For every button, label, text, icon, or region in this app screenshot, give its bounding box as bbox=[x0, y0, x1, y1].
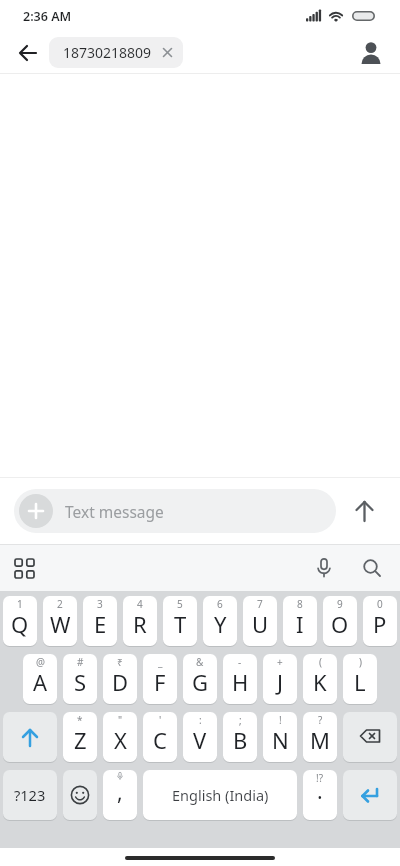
staticText: C bbox=[153, 725, 167, 755]
button[interactable]: _ bbox=[143, 654, 177, 704]
button[interactable]: 8 bbox=[283, 596, 317, 646]
button[interactable] bbox=[336, 485, 392, 537]
staticText: V bbox=[193, 725, 207, 755]
staticText: 0 bbox=[377, 597, 383, 611]
staticText: U bbox=[252, 609, 269, 639]
staticText: 6 bbox=[217, 597, 223, 611]
button[interactable]: 3 bbox=[83, 596, 117, 646]
button[interactable]: , bbox=[103, 770, 137, 820]
button[interactable]: English (India) bbox=[143, 770, 297, 820]
button[interactable]: 1 bbox=[3, 596, 37, 646]
staticText: & bbox=[196, 655, 204, 669]
button[interactable]: ? bbox=[303, 712, 337, 762]
button[interactable] bbox=[357, 553, 387, 583]
button[interactable]: 7 bbox=[243, 596, 277, 646]
button[interactable]: - bbox=[223, 654, 257, 704]
button[interactable] bbox=[3, 712, 57, 762]
button[interactable]: ₹ bbox=[103, 654, 137, 704]
staticText: Text message bbox=[65, 501, 164, 522]
button[interactable] bbox=[343, 770, 397, 820]
button[interactable] bbox=[14, 39, 42, 67]
staticText: + bbox=[277, 655, 283, 669]
button[interactable]: ! bbox=[263, 712, 297, 762]
button[interactable]: !? bbox=[303, 770, 337, 820]
button[interactable]: @ bbox=[23, 654, 57, 704]
staticText: ( bbox=[319, 655, 322, 669]
staticText: J bbox=[277, 667, 284, 697]
button[interactable] bbox=[343, 712, 397, 762]
staticText: ! bbox=[279, 713, 282, 727]
staticText: D bbox=[112, 667, 129, 697]
staticText: 5 bbox=[177, 597, 183, 611]
button[interactable] bbox=[309, 553, 339, 583]
staticText: Y bbox=[214, 609, 227, 639]
button[interactable]: + bbox=[263, 654, 297, 704]
staticText: 3 bbox=[97, 597, 103, 611]
button[interactable]: ) bbox=[343, 654, 377, 704]
button[interactable]: # bbox=[63, 654, 97, 704]
staticText: G bbox=[192, 667, 209, 697]
staticText: W bbox=[50, 609, 71, 639]
staticText: ) bbox=[359, 655, 362, 669]
staticText: " bbox=[118, 713, 123, 727]
staticText: ₹ bbox=[117, 655, 123, 669]
button[interactable]: ; bbox=[223, 712, 257, 762]
button[interactable]: 5 bbox=[163, 596, 197, 646]
staticText: English (India) bbox=[172, 785, 269, 805]
button[interactable]: : bbox=[183, 712, 217, 762]
staticText: H bbox=[232, 667, 249, 697]
staticText: @ bbox=[36, 655, 45, 669]
staticText: 8 bbox=[297, 597, 303, 611]
staticText: - bbox=[238, 655, 242, 669]
button[interactable]: 9 bbox=[323, 596, 357, 646]
staticText: : bbox=[199, 713, 202, 727]
staticText: 2:36 AM bbox=[23, 8, 72, 25]
button[interactable]: 0 bbox=[363, 596, 397, 646]
staticText: O bbox=[331, 609, 349, 639]
staticText: T bbox=[174, 609, 187, 639]
staticText: X bbox=[114, 725, 127, 755]
staticText: 7 bbox=[257, 597, 263, 611]
staticText: 18730218809 bbox=[63, 43, 152, 62]
button[interactable] bbox=[356, 38, 386, 68]
button[interactable]: 18730218809 bbox=[49, 37, 183, 68]
staticText: F bbox=[154, 667, 166, 697]
staticText: ' bbox=[159, 713, 162, 727]
button[interactable]: ?123 bbox=[3, 770, 57, 820]
button[interactable]: ( bbox=[303, 654, 337, 704]
staticText: , bbox=[117, 778, 123, 807]
staticText: S bbox=[74, 667, 87, 697]
staticText: 2 bbox=[57, 597, 63, 611]
staticText: M bbox=[310, 725, 330, 755]
staticText: B bbox=[233, 725, 248, 755]
staticText: !? bbox=[316, 771, 324, 785]
button[interactable]: * bbox=[63, 712, 97, 762]
staticText: Z bbox=[74, 725, 87, 755]
button[interactable]: " bbox=[103, 712, 137, 762]
staticText: E bbox=[94, 609, 107, 639]
staticText: 1 bbox=[17, 597, 23, 611]
button[interactable]: 2 bbox=[43, 596, 77, 646]
staticText: 9 bbox=[337, 597, 343, 611]
staticText: ? bbox=[318, 713, 323, 727]
staticText: 4 bbox=[137, 597, 143, 611]
button[interactable]: 4 bbox=[123, 596, 157, 646]
button[interactable] bbox=[9, 553, 39, 583]
staticText: R bbox=[133, 609, 147, 639]
staticText: * bbox=[77, 713, 83, 727]
staticText: ?123 bbox=[14, 785, 46, 805]
staticText: L bbox=[354, 667, 366, 697]
button[interactable]: ' bbox=[143, 712, 177, 762]
staticText: . bbox=[317, 777, 323, 806]
staticText: N bbox=[272, 725, 289, 755]
staticText: I bbox=[296, 609, 304, 639]
button[interactable] bbox=[63, 770, 97, 820]
staticText: # bbox=[77, 655, 84, 669]
staticText: Q bbox=[11, 609, 29, 639]
button[interactable]: Text message bbox=[14, 489, 336, 533]
staticText: ; bbox=[239, 713, 242, 727]
staticText: A bbox=[33, 667, 48, 697]
button[interactable]: & bbox=[183, 654, 217, 704]
staticText: P bbox=[373, 609, 387, 639]
button[interactable]: 6 bbox=[203, 596, 237, 646]
